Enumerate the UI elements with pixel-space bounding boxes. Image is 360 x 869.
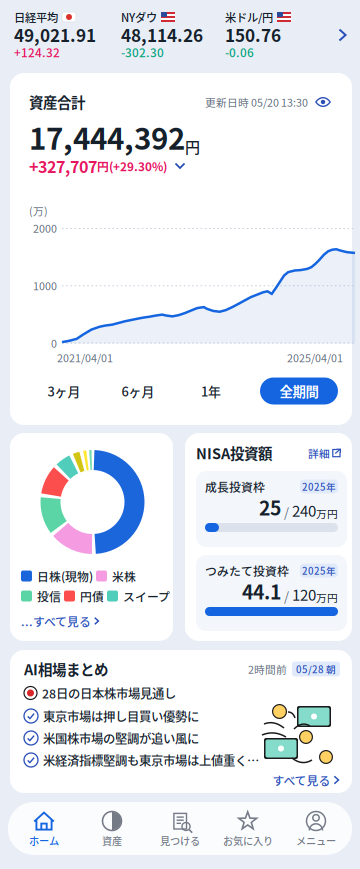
button[interactable]: お気に入り <box>214 802 282 854</box>
button[interactable]: 内訳を開く <box>167 157 193 175</box>
staticText: 17,444,392 <box>29 116 185 158</box>
button[interactable]: ...すべて見る <box>21 603 171 631</box>
staticText: ...すべて見る <box>21 612 91 630</box>
staticText: / <box>281 586 292 605</box>
staticText: 44.1 <box>242 577 281 605</box>
button[interactable]: 残高を隠す <box>308 91 338 113</box>
staticText: ホーム <box>29 833 59 848</box>
button[interactable]: ホーム <box>10 802 78 854</box>
staticText: 48,114.26 <box>121 22 203 47</box>
staticText: 円(+29.30%) <box>97 157 167 175</box>
staticText: 150.76 <box>225 22 281 47</box>
staticText: 米国株市場の堅調が追い風に <box>43 729 199 747</box>
button[interactable]: 資産 <box>78 802 146 854</box>
staticText: 25 <box>259 493 281 521</box>
staticText: NISA投資額 <box>196 442 272 463</box>
staticText: 米経済指標堅調も東京市場は上値重く… <box>43 751 259 769</box>
staticText: 2000 <box>33 220 57 236</box>
button[interactable]: すべて見る <box>273 770 340 790</box>
staticText: -302.30 <box>121 43 164 61</box>
button[interactable]: メニュー <box>282 802 350 854</box>
staticText: 1000 <box>33 278 57 293</box>
staticText: NYダウ <box>121 9 157 25</box>
staticText: +124.32 <box>14 43 60 61</box>
staticText: 120 <box>292 583 316 605</box>
staticText: メニュー <box>296 833 336 848</box>
staticText: 資産 <box>102 833 122 848</box>
staticText: スイープ <box>123 587 170 605</box>
staticText: 2025年 <box>302 563 336 577</box>
staticText: つみたて投資枠 <box>205 562 289 579</box>
staticText: 見つける <box>160 833 200 848</box>
button[interactable]: 詳細 <box>308 444 341 462</box>
staticText: 2021/04/01 <box>57 350 113 365</box>
staticText: 円債 <box>80 587 104 605</box>
staticText: 日経平均 <box>14 9 58 25</box>
staticText: -0.06 <box>225 43 254 61</box>
staticText: 2025年 <box>302 479 336 493</box>
staticText: 米株 <box>112 567 136 585</box>
staticText: 成長投資枠 <box>205 478 265 495</box>
staticText: 05/28 朝 <box>296 662 336 676</box>
staticText: 240 <box>292 499 316 521</box>
staticText: 49,021.91 <box>14 22 96 47</box>
staticText: 万円 <box>316 589 338 605</box>
staticText: 投信 <box>37 587 61 605</box>
staticText: 詳細 <box>308 445 330 461</box>
staticText: 東京市場は押し目買い優勢に <box>43 707 199 725</box>
staticText: 更新日時 <box>205 94 249 110</box>
staticText: 万円 <box>316 505 338 521</box>
staticText: 資産合計 <box>29 91 85 112</box>
button[interactable]: 6ヶ月 <box>99 377 177 405</box>
staticText: +327,707 <box>29 154 97 178</box>
staticText: お気に入り <box>223 833 273 848</box>
staticText: 米ドル/円 <box>225 9 273 25</box>
staticText: 6ヶ月 <box>121 382 154 400</box>
staticText: 2時間前 <box>248 661 287 677</box>
staticText: AI相場まとめ <box>24 658 108 679</box>
staticText: 05/20 13:30 <box>249 94 308 110</box>
staticText: すべて見る <box>273 771 331 789</box>
staticText: 円 <box>185 136 200 157</box>
button[interactable]: 全期間 <box>260 377 338 404</box>
staticText: (万) <box>29 203 48 218</box>
button[interactable]: 3ヶ月 <box>29 377 99 405</box>
staticText: 0 <box>51 335 57 351</box>
button[interactable]: 見つける <box>146 802 214 854</box>
staticText: 日株(現物) <box>37 567 93 585</box>
staticText: 2025/04/01 <box>287 350 343 365</box>
staticText: 全期間 <box>279 381 318 401</box>
staticText: / <box>281 502 292 521</box>
button[interactable]: すべての市況 <box>326 10 360 60</box>
staticText: 1年 <box>201 382 221 400</box>
button[interactable]: 1年 <box>177 377 245 405</box>
staticText: 28日の日本株市場見通し <box>42 684 176 702</box>
staticText: 3ヶ月 <box>47 382 80 400</box>
